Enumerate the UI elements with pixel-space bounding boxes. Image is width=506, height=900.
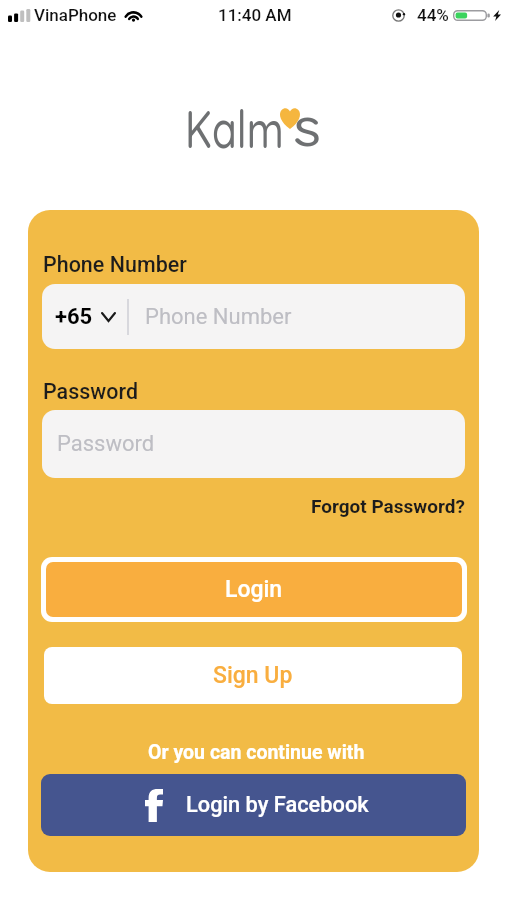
staticText: Kalm — [185, 94, 284, 161]
staticText: Or you can continue with — [148, 741, 365, 764]
staticText: Phone Number — [145, 304, 292, 330]
staticText: 44% — [417, 5, 449, 25]
staticText: Password — [57, 431, 155, 457]
staticText: Phone Number — [43, 252, 187, 277]
staticText: Password — [43, 379, 138, 404]
staticText: s — [293, 91, 322, 160]
button[interactable]: Sign Up — [44, 647, 462, 704]
button[interactable]: Login by Facebook — [41, 774, 466, 836]
button[interactable]: Password — [42, 410, 465, 478]
button[interactable]: Login — [46, 562, 462, 617]
staticText: 11:40 AM — [218, 5, 292, 25]
staticText: Sign Up — [213, 662, 293, 689]
button[interactable]: +65 — [42, 304, 127, 330]
staticText: Login — [225, 576, 283, 603]
staticText: +65 — [55, 304, 93, 330]
button[interactable]: Forgot Password? — [311, 495, 465, 517]
staticText: Login by Facebook — [186, 792, 369, 818]
staticText: VinaPhone — [34, 5, 117, 25]
